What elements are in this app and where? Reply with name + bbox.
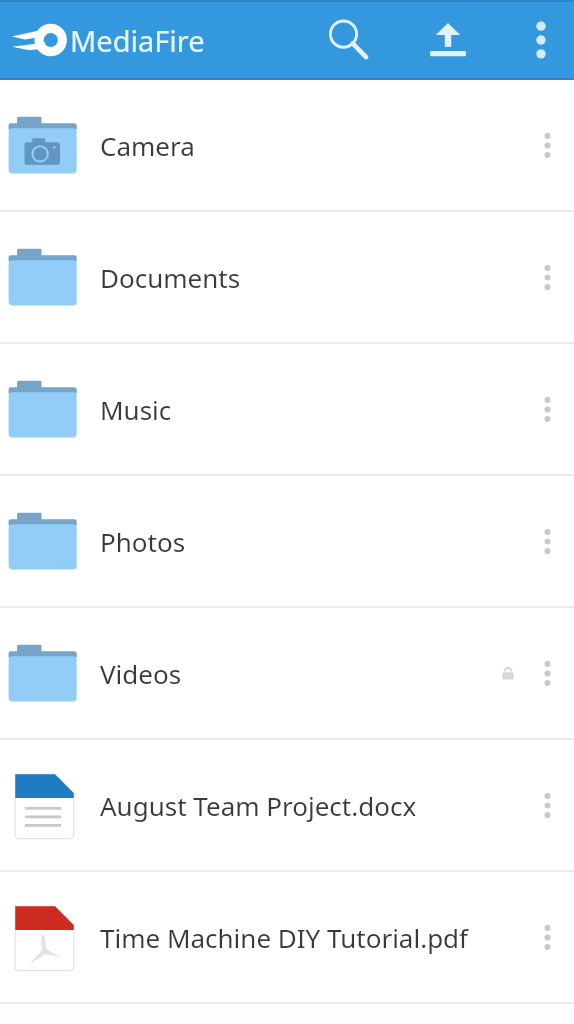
staticText: August Team Project.docx bbox=[100, 788, 522, 823]
button[interactable]: Item options bbox=[522, 872, 572, 1002]
button[interactable]: Documents bbox=[0, 212, 574, 342]
button[interactable]: Time Machine DIY Tutorial.pdf bbox=[0, 872, 574, 1002]
button[interactable]: Camera bbox=[0, 80, 574, 210]
staticText: Music bbox=[100, 392, 522, 427]
button[interactable]: Search bbox=[318, 0, 380, 80]
staticText: Photos bbox=[100, 524, 522, 559]
button[interactable]: August Team Project.docx bbox=[0, 740, 574, 870]
button[interactable]: Item options bbox=[522, 80, 572, 210]
button[interactable]: Videos bbox=[0, 608, 574, 738]
button[interactable]: Item options bbox=[522, 476, 572, 606]
button[interactable]: Item options bbox=[522, 344, 572, 474]
button[interactable]: Photos bbox=[0, 476, 574, 606]
staticText: Time Machine DIY Tutorial.pdf bbox=[100, 920, 522, 955]
staticText: Documents bbox=[100, 260, 522, 295]
button[interactable]: Item options bbox=[522, 740, 572, 870]
staticText: Videos bbox=[100, 656, 500, 691]
button[interactable]: Upload bbox=[417, 0, 479, 80]
button[interactable]: Item options bbox=[522, 212, 572, 342]
button[interactable]: Item options bbox=[522, 608, 572, 738]
staticText: Camera bbox=[100, 128, 522, 163]
button[interactable]: Music bbox=[0, 344, 574, 474]
staticText: MediaFire bbox=[70, 21, 205, 60]
button[interactable]: More options bbox=[516, 0, 566, 80]
